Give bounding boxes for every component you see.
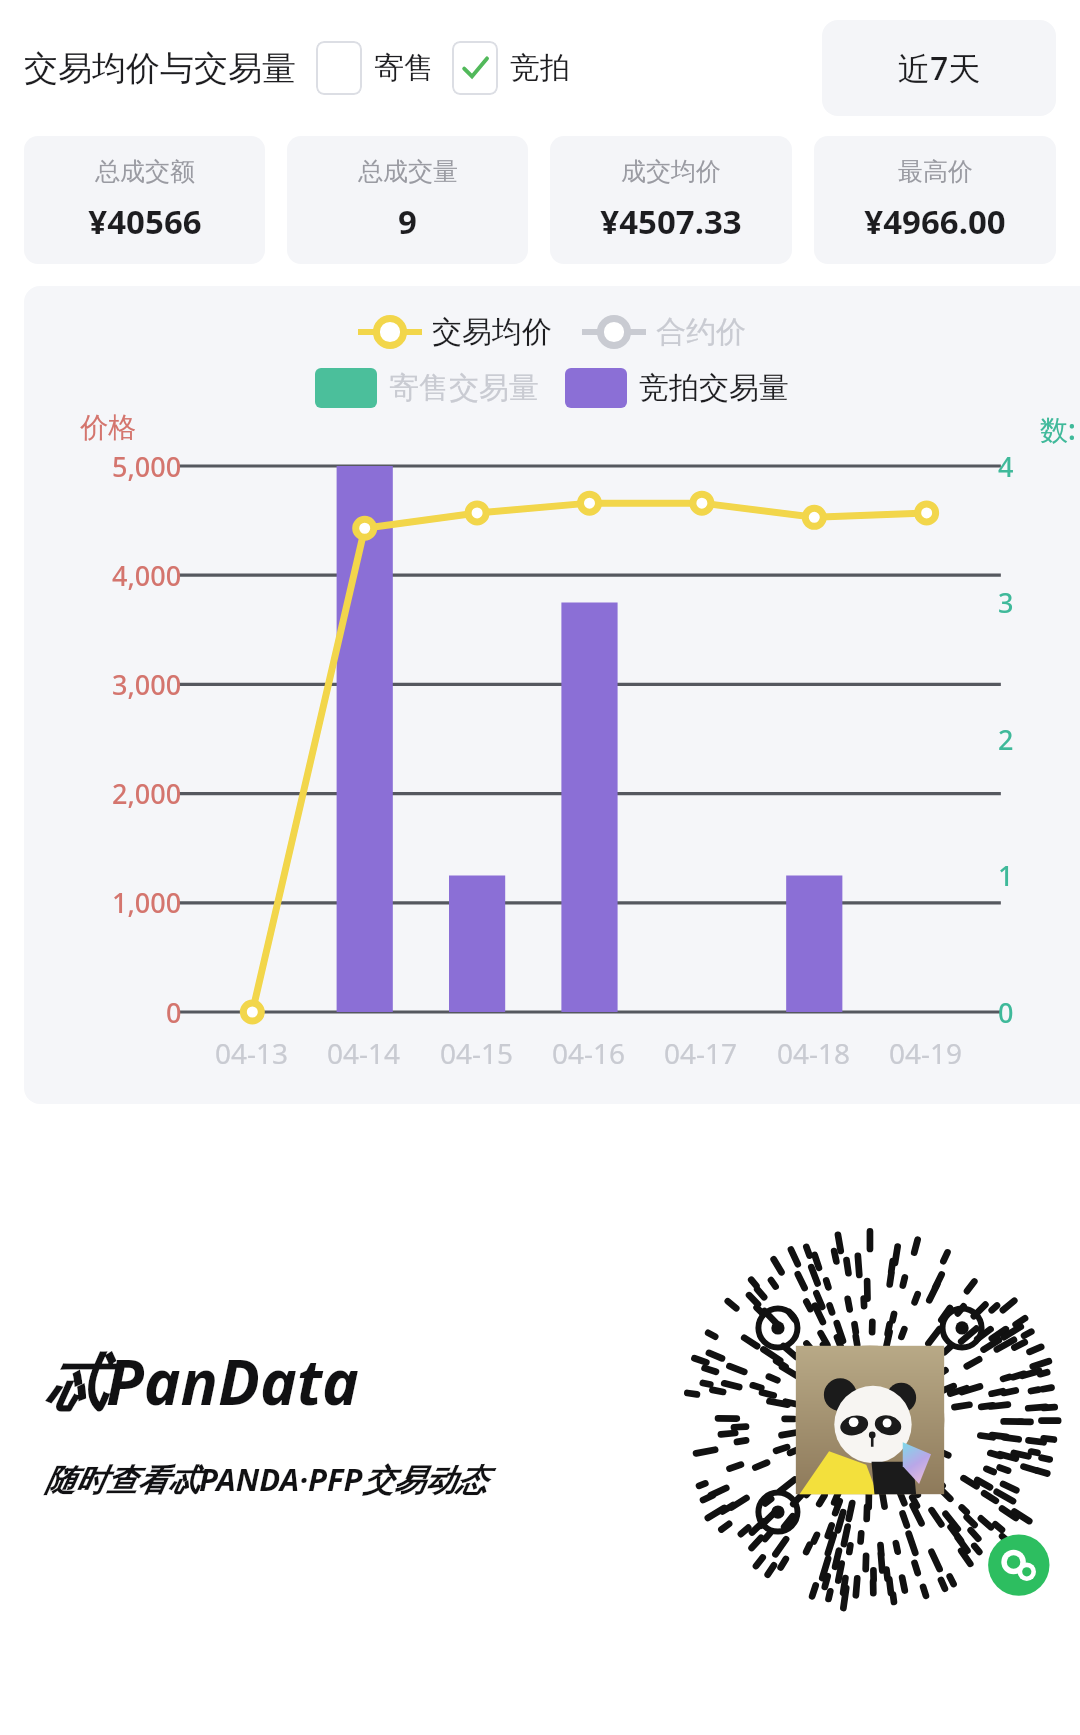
button[interactable]: 总成交量 xyxy=(287,136,528,264)
button[interactable]: 交易均价 xyxy=(358,312,552,352)
staticText: 寄售 xyxy=(374,49,434,87)
staticText: 4 xyxy=(998,448,1014,485)
staticText: 04-19 xyxy=(889,1034,963,1072)
button[interactable]: 扫码关注小程序 xyxy=(684,1234,1056,1606)
staticText: 交易均价 xyxy=(432,313,552,351)
staticText: 3 xyxy=(998,584,1014,621)
button[interactable]: 合约价 xyxy=(582,312,746,352)
staticText: 最高价 xyxy=(898,156,973,187)
staticText: 2,000 xyxy=(112,775,182,812)
staticText: 1 xyxy=(998,857,1014,894)
staticText: 成交均价 xyxy=(621,156,721,187)
staticText: 5,000 xyxy=(112,448,182,485)
staticText: 2 xyxy=(998,721,1014,758)
staticText: 竞拍交易量 xyxy=(639,369,789,407)
staticText: 竞拍 xyxy=(510,49,570,87)
staticText: 0 xyxy=(998,994,1014,1031)
staticText: 3,000 xyxy=(112,666,182,703)
staticText: 总成交量 xyxy=(358,156,458,187)
staticText: 04-13 xyxy=(215,1034,289,1072)
staticText: 总成交额 xyxy=(95,156,195,187)
staticText: 交易均价与交易量 xyxy=(24,47,296,90)
button[interactable]: 竞拍交易量 xyxy=(565,368,789,408)
button[interactable]: 竞拍 xyxy=(452,41,570,95)
staticText: 寄售交易量 xyxy=(389,369,539,407)
staticText: ¥4507.33 xyxy=(600,199,742,244)
button[interactable]: 成交均价 xyxy=(550,136,792,264)
staticText: 9 xyxy=(398,199,417,244)
button[interactable]: 最高价 xyxy=(814,136,1056,264)
staticText: 04-16 xyxy=(552,1034,626,1072)
button[interactable]: 寄售 xyxy=(316,41,434,95)
staticText: 近7天 xyxy=(898,46,981,90)
staticText: ¥40566 xyxy=(88,199,202,244)
staticText: 数: xyxy=(1040,410,1076,448)
staticText: 04-17 xyxy=(664,1034,738,1072)
button[interactable]: 总成交额 xyxy=(24,136,265,264)
staticText: 随时查看忒PANDA·PFP交易动态 xyxy=(44,1458,487,1500)
button[interactable]: 寄售交易量 xyxy=(315,368,539,408)
staticText: 4,000 xyxy=(112,557,182,594)
staticText: ¥4966.00 xyxy=(864,199,1006,244)
staticText: 1,000 xyxy=(112,884,182,921)
button[interactable]: 近7天 xyxy=(822,20,1056,116)
staticText: 忒PanData xyxy=(44,1339,359,1424)
staticText: 价格 xyxy=(80,410,136,445)
staticText: 04-15 xyxy=(440,1034,514,1072)
staticText: 合约价 xyxy=(656,313,746,351)
staticText: 0 xyxy=(166,994,182,1031)
staticText: 04-14 xyxy=(327,1034,401,1072)
staticText: 04-18 xyxy=(777,1034,851,1072)
